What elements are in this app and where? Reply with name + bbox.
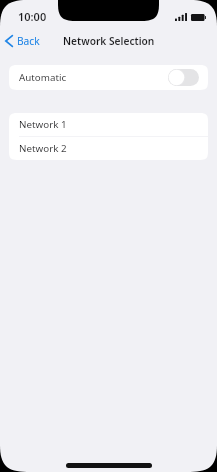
staticText: Network Selection: [63, 34, 155, 48]
staticText: Automatic: [19, 71, 67, 84]
staticText: Back: [17, 34, 40, 48]
button[interactable]: Automatic: [9, 65, 208, 90]
button[interactable]: Automatic toggle: [168, 69, 199, 86]
button[interactable]: Network 2: [9, 137, 208, 160]
button[interactable]: Network 1: [9, 113, 208, 136]
button[interactable]: Back: [0, 32, 46, 50]
staticText: 10:00: [18, 9, 47, 24]
staticText: Network 2: [19, 142, 67, 155]
staticText: Network 1: [19, 118, 67, 131]
